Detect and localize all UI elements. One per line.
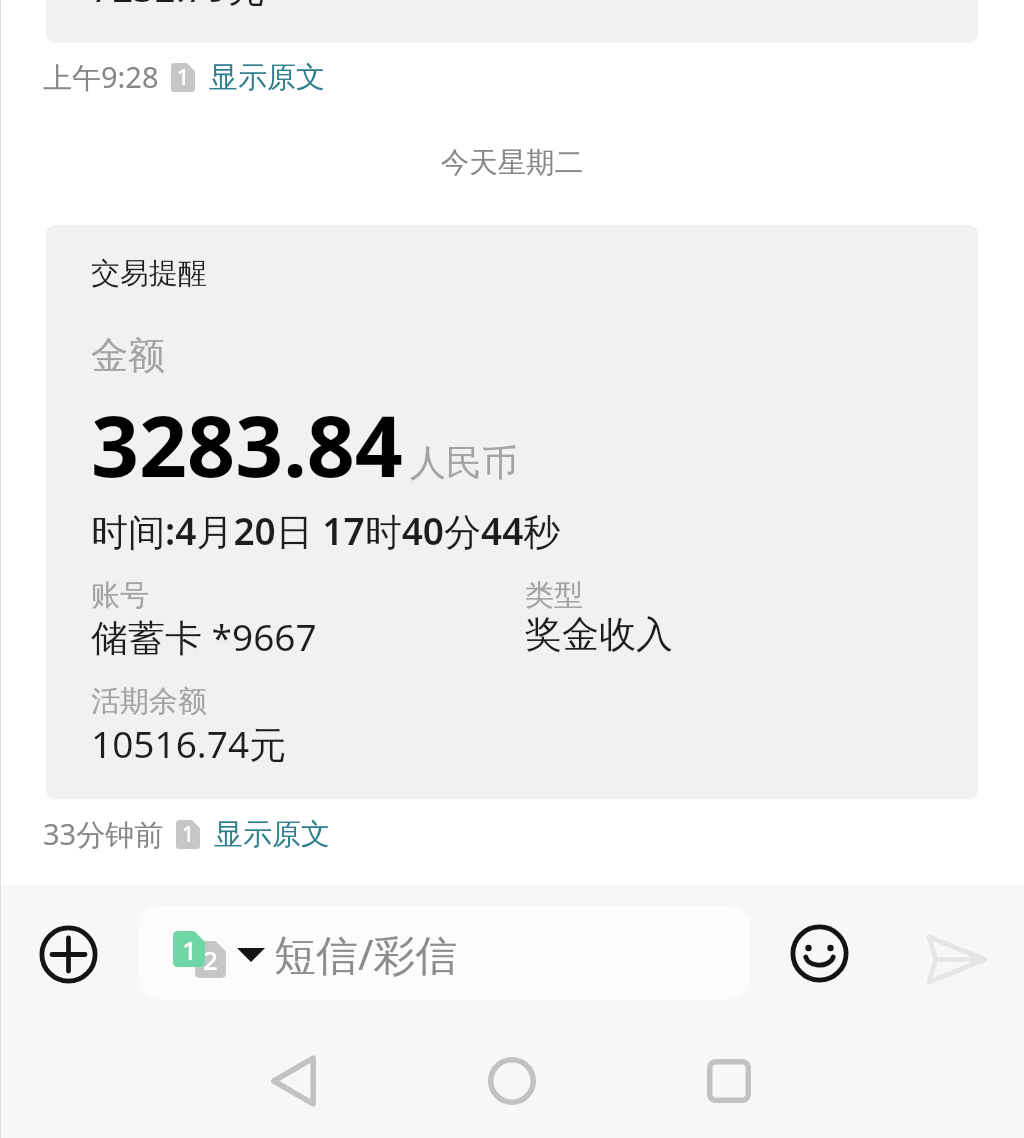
- staticText: 7232.79元: [91, 0, 265, 13]
- staticText: 交易提醒: [91, 255, 207, 292]
- button[interactable]: Send: [920, 925, 992, 977]
- button[interactable]: Emoji: [789, 923, 850, 984]
- staticText: 活期余额: [91, 683, 207, 720]
- button[interactable]: 交易提醒: [46, 225, 978, 799]
- staticText: 1: [177, 63, 190, 92]
- button[interactable]: Add attachment: [38, 924, 99, 985]
- staticText: 今天星期二: [0, 145, 1024, 181]
- staticText: 上午9:28: [43, 57, 159, 97]
- staticText: 时间:4月20日 17时40分44秒: [91, 505, 561, 556]
- staticText: 奖金收入: [525, 611, 673, 658]
- staticText: 3283.84: [91, 387, 403, 501]
- staticText: 金额: [91, 332, 165, 379]
- button[interactable]: 显示原文: [209, 59, 325, 96]
- staticText: 10516.74元: [91, 718, 287, 769]
- staticText: 2: [203, 942, 218, 977]
- button[interactable]: Home: [472, 1041, 552, 1121]
- staticText: 33分钟前: [43, 814, 164, 854]
- button[interactable]: Recent apps: [689, 1041, 769, 1121]
- button[interactable]: Back: [253, 1041, 333, 1121]
- staticText: 类型: [525, 577, 583, 614]
- staticText: 1: [182, 820, 195, 849]
- button[interactable]: 7232.79元: [46, 0, 978, 43]
- staticText: 1: [182, 932, 197, 967]
- button[interactable]: 显示原文: [214, 816, 330, 853]
- staticText: 人民币: [410, 440, 518, 485]
- button[interactable]: 2: [139, 906, 750, 999]
- staticText: 储蓄卡 *9667: [91, 611, 317, 662]
- staticText: 短信/彩信: [274, 925, 458, 982]
- staticText: 账号: [91, 577, 149, 614]
